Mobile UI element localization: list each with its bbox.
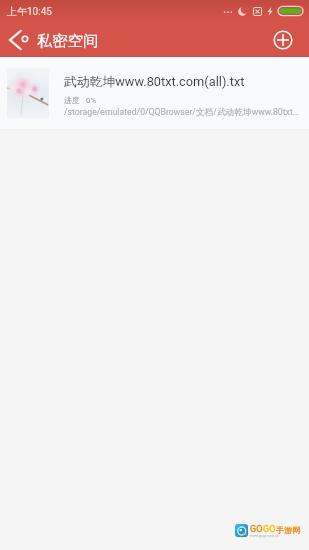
staticText: 上午10:45	[7, 5, 52, 18]
staticText: www.gogo-soft.cn	[250, 534, 280, 538]
staticText: GO	[263, 524, 276, 535]
staticText: GO	[250, 524, 263, 535]
button[interactable]: 私密空间	[0, 29, 309, 49]
staticText: 私密空间	[37, 31, 99, 50]
staticText: 武动乾坤www.80txt.com(all).txt	[64, 74, 245, 90]
staticText: /storage/emulated/0/QQBrowser/文档/武动乾坤www…	[64, 107, 300, 118]
staticText: 进度	[64, 95, 80, 105]
staticText: 0%	[86, 96, 97, 105]
staticText: 手游网	[276, 525, 300, 535]
button[interactable]: 武动乾坤www.80txt.com(all).txt	[0, 57, 309, 130]
button[interactable]: Add	[270, 26, 296, 52]
